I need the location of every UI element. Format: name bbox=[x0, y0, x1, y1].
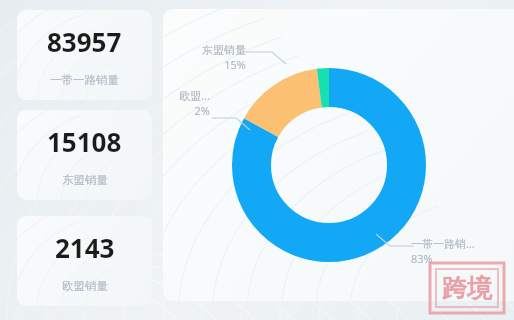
staticText: 15108 bbox=[47, 124, 122, 159]
staticText: 东盟销量 bbox=[62, 173, 108, 187]
staticText: 2% bbox=[194, 103, 210, 118]
button[interactable]: 83957 bbox=[17, 10, 152, 100]
button[interactable]: 欧盟… bbox=[168, 88, 210, 122]
staticText: 15% bbox=[224, 57, 246, 72]
button[interactable]: 2143 bbox=[17, 216, 152, 306]
staticText: 2143 bbox=[55, 230, 115, 265]
button[interactable]: 东盟销量 bbox=[188, 43, 246, 77]
button[interactable]: Sales share donut chart bbox=[227, 63, 431, 267]
staticText: 一带一路销量 bbox=[50, 73, 119, 87]
button[interactable]: 15108 bbox=[17, 110, 152, 200]
staticText: 欧盟销量 bbox=[62, 279, 108, 293]
staticText: 一带一路销… bbox=[411, 236, 475, 251]
staticText: 欧盟… bbox=[179, 88, 210, 103]
staticText: 东盟销量 bbox=[202, 43, 246, 57]
staticText: 跨境 bbox=[442, 273, 492, 304]
button[interactable]: 一带一路销… bbox=[411, 236, 495, 270]
staticText: 83957 bbox=[47, 24, 122, 59]
staticText: 83% bbox=[411, 251, 433, 266]
